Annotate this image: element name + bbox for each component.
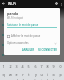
- button[interactable]: 4: [20, 62, 25, 70]
- button[interactable]: j: [39, 78, 44, 80]
- staticText: ANNULER: [22, 48, 35, 52]
- staticText: o: [52, 72, 55, 77]
- staticText: Wi-Fi: [8, 1, 16, 6]
- button[interactable]: 9: [51, 62, 56, 70]
- button[interactable]: 1: [1, 62, 6, 70]
- button[interactable]: 3: [14, 62, 19, 70]
- staticText: t: [28, 72, 30, 77]
- staticText: w: [9, 72, 12, 77]
- staticText: 2: [9, 64, 12, 69]
- staticText: panda: [7, 11, 19, 16]
- button[interactable]: e: [14, 70, 19, 78]
- button[interactable]: Afficher le mot de passe: [7, 34, 41, 38]
- button[interactable]: r: [20, 70, 25, 78]
- staticText: i: [47, 72, 48, 77]
- button[interactable]: i: [45, 70, 50, 78]
- button[interactable]: q: [1, 70, 6, 78]
- button[interactable]: 2: [8, 62, 13, 70]
- button[interactable]: o: [51, 70, 56, 78]
- button[interactable]: Back: [1, 1, 6, 6]
- staticText: r: [22, 72, 24, 77]
- button[interactable]: SE CONNECTER: [37, 47, 58, 53]
- button[interactable]: Settings: [54, 1, 59, 6]
- button[interactable]: 6: [33, 62, 38, 70]
- button[interactable]: 7: [39, 62, 44, 70]
- staticText: Afficher le mot de passe: [11, 34, 41, 38]
- button[interactable]: f: [20, 78, 25, 80]
- button[interactable]: More options: [59, 2, 63, 6]
- button[interactable]: l: [51, 78, 56, 80]
- button[interactable]: h: [33, 78, 38, 80]
- button[interactable]: u: [39, 70, 44, 78]
- staticText: k: [47, 78, 49, 80]
- button[interactable]: 5: [26, 62, 31, 70]
- staticText: 7: [40, 64, 43, 69]
- staticText: 6: [34, 64, 37, 69]
- button[interactable]: 0: [58, 62, 63, 70]
- button[interactable]: p: [58, 70, 63, 78]
- staticText: Saisissez le mot de passe: [7, 23, 39, 27]
- staticText: Wi-Fi hotspot: [7, 16, 24, 20]
- staticText: e: [15, 72, 18, 77]
- staticText: y: [35, 72, 37, 77]
- button[interactable]: w: [8, 70, 13, 78]
- staticText: f: [22, 78, 24, 80]
- button[interactable]: t: [26, 70, 31, 78]
- staticText: 0: [59, 64, 62, 69]
- staticText: u: [40, 72, 43, 77]
- staticText: h: [34, 78, 37, 80]
- staticText: 8: [46, 64, 49, 69]
- staticText: 9: [52, 64, 55, 69]
- button[interactable]: 8: [45, 62, 50, 70]
- staticText: SE CONNECTER: [38, 48, 57, 52]
- staticText: 3: [15, 64, 18, 69]
- staticText: d: [15, 78, 18, 80]
- staticText: 4: [21, 64, 24, 69]
- staticText: 5: [27, 64, 30, 69]
- staticText: p: [59, 72, 62, 77]
- staticText: j: [41, 78, 42, 80]
- button[interactable]: d: [14, 78, 19, 80]
- staticText: Options avancées: [7, 41, 29, 45]
- button[interactable]: y: [33, 70, 38, 78]
- button[interactable]: k: [45, 78, 50, 80]
- staticText: q: [2, 72, 5, 77]
- button[interactable]: Options avancées: [7, 41, 57, 45]
- staticText: l: [53, 78, 54, 80]
- button[interactable]: ANNULER: [21, 47, 36, 53]
- staticText: 1: [2, 64, 5, 69]
